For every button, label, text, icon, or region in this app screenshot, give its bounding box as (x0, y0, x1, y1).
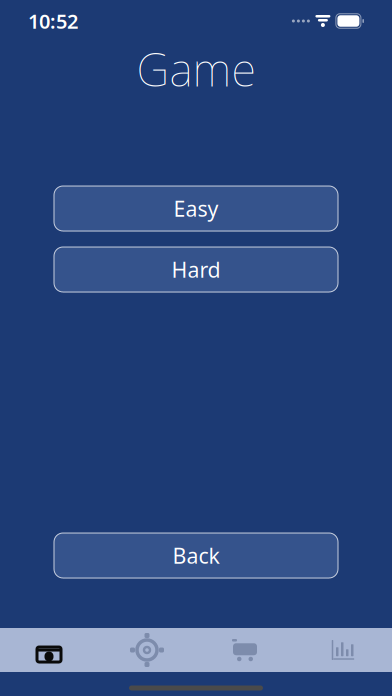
button[interactable]: Settings (98, 628, 196, 672)
button[interactable]: Back (54, 533, 338, 578)
button[interactable]: Stats (294, 628, 392, 672)
staticText: 10:52 (28, 8, 78, 34)
button[interactable]: Hard (54, 247, 338, 292)
staticText: Back (172, 541, 219, 570)
staticText: Easy (173, 194, 218, 223)
button[interactable]: Easy (54, 186, 338, 231)
button[interactable]: Home (0, 628, 98, 672)
button[interactable]: Store (196, 628, 294, 672)
staticText: Hard (171, 255, 220, 284)
staticText: Game (136, 39, 255, 99)
